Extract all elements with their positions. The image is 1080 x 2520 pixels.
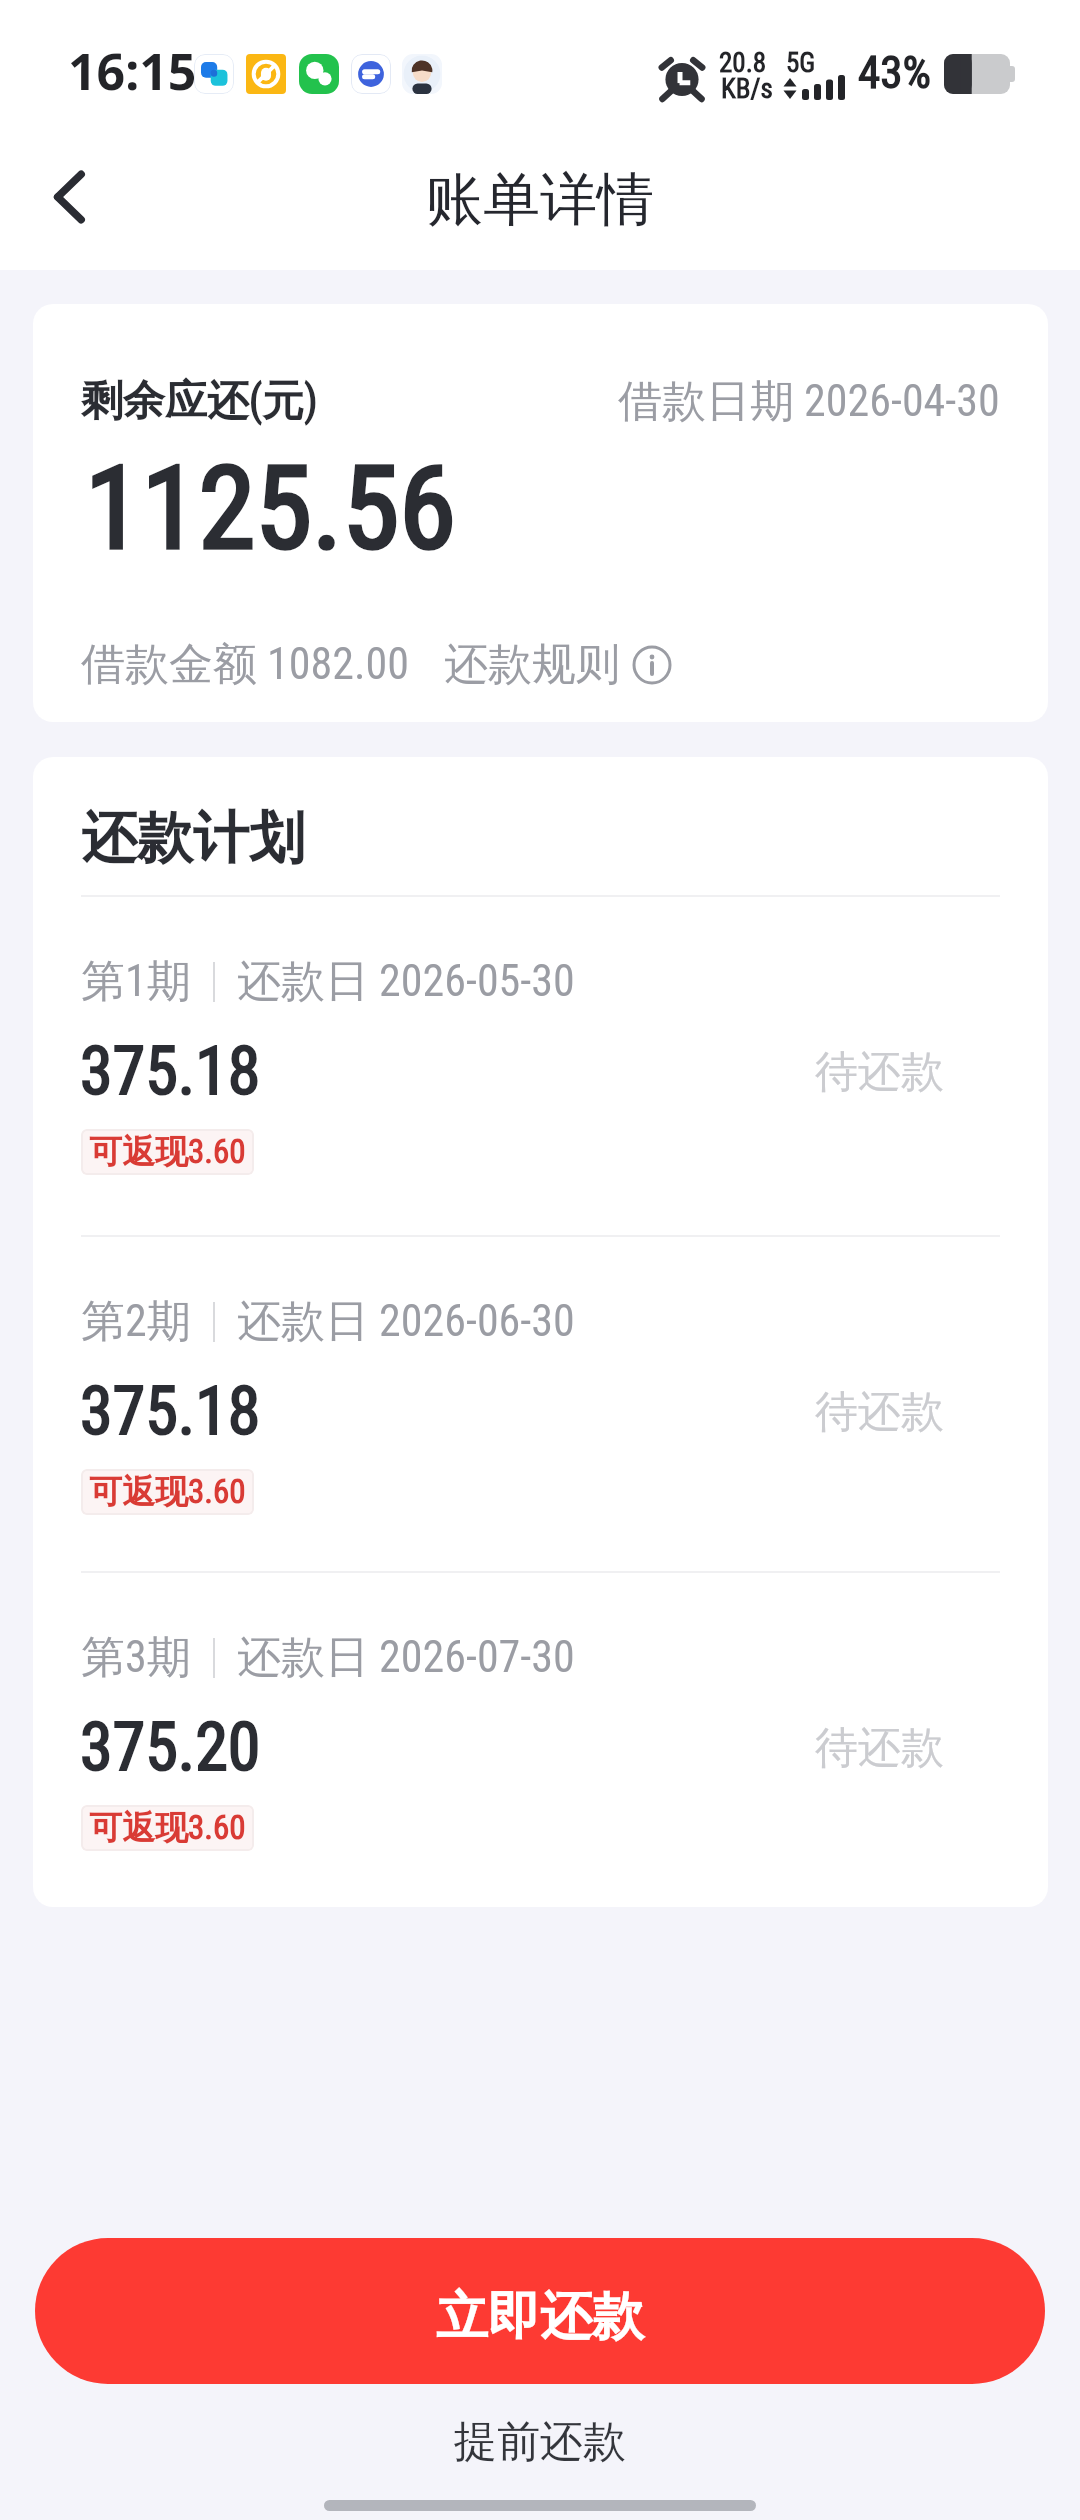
staticText: 第3期 xyxy=(81,1630,191,1685)
staticText: 375.20 xyxy=(80,1709,261,1786)
button[interactable]: Back xyxy=(14,141,126,253)
staticText: 剩余应还(元) xyxy=(81,375,318,428)
staticText: 第1期 xyxy=(81,954,191,1009)
staticText: 还款日 2026-07-30 xyxy=(237,1630,575,1685)
staticText: 1125.56 xyxy=(85,441,456,576)
staticText: 还款日 2026-05-30 xyxy=(237,954,575,1009)
staticText: 第2期 xyxy=(81,1294,191,1349)
button[interactable]: 还款规则 xyxy=(444,637,672,692)
button[interactable]: 第2期 xyxy=(33,1267,1048,1575)
staticText: 375.18 xyxy=(80,1373,261,1450)
staticText: 16:15 xyxy=(68,37,197,105)
staticText: 账单详情 xyxy=(426,164,654,236)
staticText: 立即还款 xyxy=(436,2284,644,2350)
staticText: 5G xyxy=(786,47,816,79)
staticText: KB/s xyxy=(721,73,773,105)
staticText: 20.8 xyxy=(719,47,767,79)
staticText: 可返现3.60 xyxy=(89,1807,246,1849)
staticText: 提前还款 xyxy=(454,2415,626,2469)
staticText: 375.18 xyxy=(80,1033,261,1110)
button[interactable]: 第1期 xyxy=(33,927,1048,1235)
staticText: 待还款 xyxy=(815,1045,944,1099)
button[interactable]: 立即还款 xyxy=(35,2238,1045,2384)
staticText: 借款金额 1082.00 xyxy=(81,637,410,692)
staticText: 43% xyxy=(858,46,931,99)
staticText: 可返现3.60 xyxy=(89,1471,246,1513)
staticText: 可返现3.60 xyxy=(89,1131,246,1173)
button[interactable]: 第3期 xyxy=(33,1603,1048,1907)
staticText: 借款日期 2026-04-30 xyxy=(618,374,1000,429)
button[interactable]: 提前还款 xyxy=(414,2409,666,2475)
staticText: 还款计划 xyxy=(81,803,305,874)
staticText: 还款规则 xyxy=(444,637,620,692)
staticText: 待还款 xyxy=(815,1721,944,1775)
staticText: 还款日 2026-06-30 xyxy=(237,1294,575,1349)
staticText: 待还款 xyxy=(815,1385,944,1439)
